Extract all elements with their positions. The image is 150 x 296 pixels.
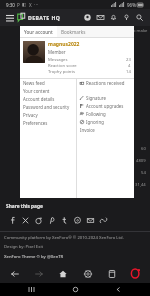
staticText: 54	[141, 170, 146, 176]
staticText: Community platform by XenForo® © 2010-20…	[4, 235, 124, 241]
staticText: Share this page	[6, 203, 43, 210]
button[interactable]: News feed	[20, 79, 76, 87]
button[interactable]: Signature	[77, 94, 134, 102]
button[interactable]: Opera menu	[126, 264, 145, 283]
button[interactable]: Share on reddit	[32, 214, 45, 227]
staticText: 9:30	[6, 2, 15, 8]
staticText: Invoice	[80, 127, 95, 133]
staticText: Reaction score	[48, 63, 77, 69]
button[interactable]: Forward	[29, 264, 48, 283]
staticText: ◧	[22, 2, 27, 7]
staticText: magnus2022	[48, 41, 80, 48]
staticText: Your account	[24, 29, 53, 35]
staticText: Account upgrades	[86, 103, 124, 109]
staticText: Design by: Pixel Exit	[4, 244, 44, 250]
staticText: Messages	[48, 57, 68, 63]
button[interactable]: Menu	[4, 12, 15, 23]
staticText: 31,44	[135, 182, 146, 188]
staticText: ⋯	[34, 2, 39, 7]
button[interactable]: Location	[120, 10, 133, 25]
staticText: XenForo Theme © by @XenTR	[4, 254, 64, 260]
button[interactable]: Search	[133, 10, 146, 25]
button[interactable]: Share on f	[6, 214, 19, 227]
button[interactable]: Your account	[24, 26, 53, 37]
button[interactable]: Back	[107, 283, 129, 296]
button[interactable]: Speed dial	[78, 264, 97, 283]
button[interactable]: Share on mail	[84, 214, 97, 227]
staticText: Bookmarks	[61, 29, 86, 35]
staticText: P	[17, 2, 20, 8]
staticText: 4	[128, 63, 131, 69]
button[interactable]: Following	[77, 110, 134, 118]
button[interactable]: Tabs	[102, 264, 121, 283]
button[interactable]: Share on link	[97, 214, 110, 227]
button[interactable]: Share on t	[58, 214, 71, 227]
staticText: Reactions received	[86, 80, 125, 86]
staticText: 60	[141, 146, 146, 152]
button[interactable]: Back	[5, 264, 24, 283]
staticText: Ignoring	[86, 119, 104, 125]
staticText: Following	[86, 111, 106, 117]
staticText: 4809	[136, 158, 146, 164]
staticText: Signature	[86, 95, 106, 101]
staticText: Trophy points	[48, 69, 75, 75]
button[interactable]: Bookmarks	[61, 26, 86, 37]
button[interactable]: Preferences	[20, 119, 76, 127]
staticText: 96%	[127, 2, 136, 8]
staticText: X	[29, 2, 32, 8]
button[interactable]: Recents	[21, 283, 43, 296]
button[interactable]: Notifications alerts	[81, 10, 94, 25]
staticText: o make	[133, 28, 148, 34]
staticText: News feed	[23, 80, 45, 86]
staticText: Your content	[23, 88, 50, 94]
button[interactable]: Account details	[20, 95, 76, 103]
button[interactable]: Ignoring	[77, 118, 134, 126]
staticText: Preferences	[23, 120, 48, 126]
button[interactable]: Account upgrades	[77, 102, 134, 110]
button[interactable]: Privacy	[20, 111, 76, 119]
button[interactable]: Home	[53, 264, 72, 283]
button[interactable]: Home	[64, 283, 86, 296]
button[interactable]: magnus2022	[23, 41, 131, 75]
button[interactable]: Password and security	[20, 103, 76, 111]
staticText: Password and security	[23, 104, 70, 110]
button[interactable]: Inbox	[94, 10, 107, 25]
button[interactable]: Reactions received	[77, 79, 134, 87]
staticText: 14	[126, 69, 131, 75]
staticText: Member	[48, 49, 66, 55]
button[interactable]: Share on wa	[71, 214, 84, 227]
staticText: Privacy	[23, 112, 38, 118]
button[interactable]: Alerts	[107, 10, 120, 25]
staticText: Account details	[23, 96, 55, 102]
staticText: DEBATE HQ	[28, 14, 61, 21]
button[interactable]: Share on P	[45, 214, 58, 227]
button[interactable]: Invoice	[77, 126, 134, 134]
button[interactable]: Share on X	[19, 214, 32, 227]
button[interactable]: Your content	[20, 87, 76, 95]
staticText: 23	[126, 57, 131, 63]
